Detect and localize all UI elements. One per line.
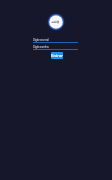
staticText: Digite o e-mail	[33, 38, 49, 42]
button[interactable]: Entrar	[51, 52, 63, 59]
button[interactable]: App logo	[44, 10, 68, 34]
staticText: Entrar	[51, 53, 63, 58]
button[interactable]: Digite a senha	[33, 45, 78, 50]
button[interactable]: Digite o e-mail	[33, 38, 78, 43]
staticText: Digite a senha	[33, 45, 49, 49]
